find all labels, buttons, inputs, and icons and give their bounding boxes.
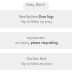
button[interactable]: my insurnce [0,32,72,49]
staticText: New Sty from Dear Sugr [19,15,54,19]
staticText: my insurnce [27,36,45,40]
staticText: Tap to follow my story [21,62,52,66]
staticText: Tap to follow my story [21,20,52,24]
staticText: no money, please stop whing [15,41,58,45]
button[interactable]: New Sty from Dear Sugr [0,10,72,28]
button[interactable]: Today, March [23,2,49,10]
staticText: Today, March [26,3,45,7]
button[interactable]: Our Vces Hed [0,53,72,70]
staticText: Our Vces Hed [26,57,46,61]
